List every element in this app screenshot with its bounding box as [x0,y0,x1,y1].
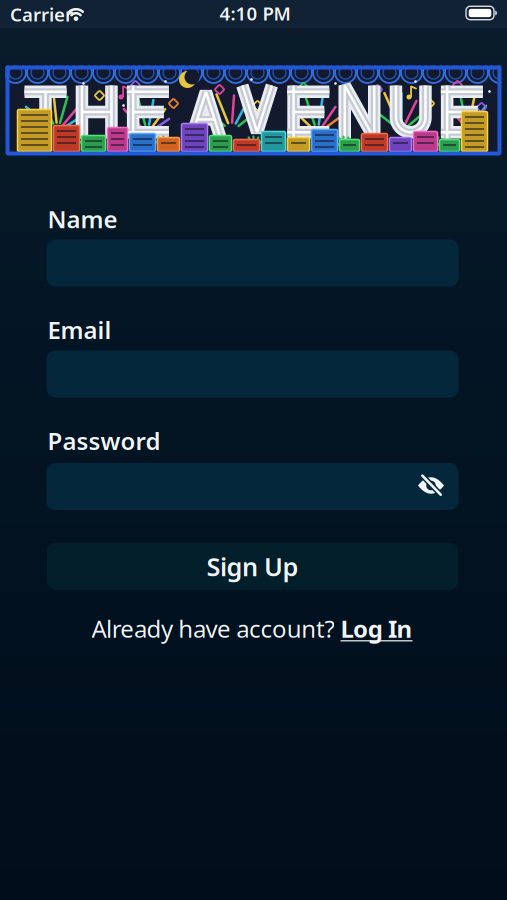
staticText: Password [47,425,160,457]
staticText: Sign Up [206,550,298,583]
staticText: Already have account? [91,613,334,644]
button[interactable]: Log In [340,613,412,644]
staticText: Log In [340,613,412,644]
button[interactable]: Show password [411,467,450,503]
button[interactable]: Sign Up [47,543,458,590]
staticText: 4:10 PM [219,1,290,26]
staticText: Carrier [10,2,73,27]
staticText: Email [47,314,111,346]
staticText: Name [47,203,117,235]
